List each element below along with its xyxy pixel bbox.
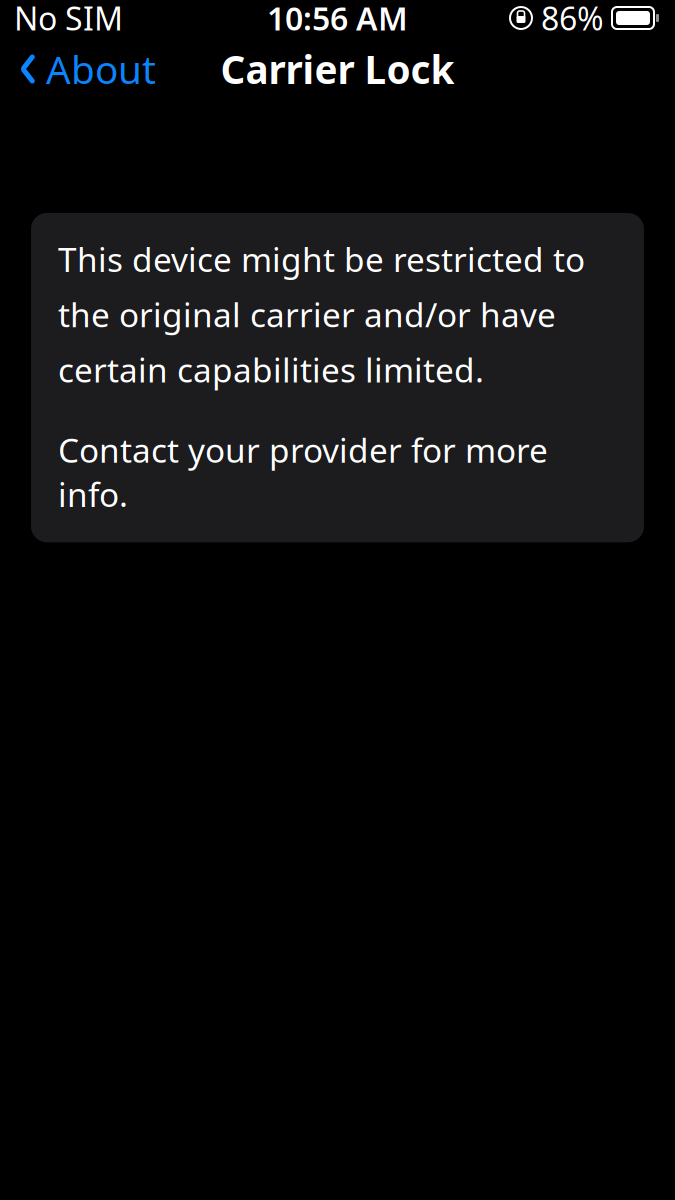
staticText: 10:56 AM: [267, 0, 408, 39]
staticText: About: [46, 43, 156, 95]
staticText: 86%: [541, 0, 604, 39]
staticText: Contact your provider for more info.: [58, 428, 548, 516]
button[interactable]: About: [4, 35, 170, 103]
staticText: No SIM: [14, 0, 123, 39]
staticText: This device might be restricted to the o…: [58, 237, 585, 392]
staticText: Carrier Lock: [220, 43, 454, 95]
